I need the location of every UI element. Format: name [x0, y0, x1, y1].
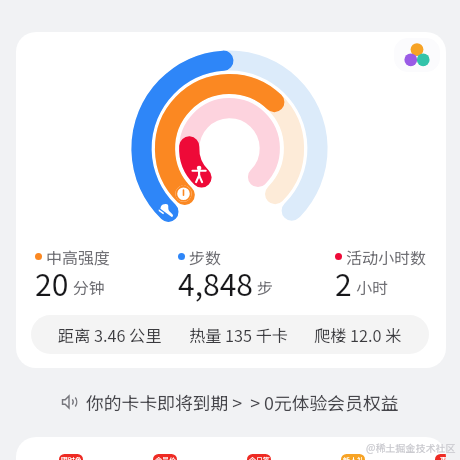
button[interactable]: 中高强度 [35, 245, 111, 311]
staticText: 今日签 [249, 455, 270, 460]
staticText: 2 [335, 261, 352, 304]
button[interactable]: 距离 3.46 公里 [31, 315, 429, 354]
button[interactable]: 步数 [178, 245, 274, 311]
staticText: 新人礼 [343, 455, 364, 460]
staticText: 步 [257, 275, 274, 298]
button[interactable]: Service 4 [323, 442, 383, 460]
staticText: 会员价 [155, 455, 176, 460]
staticText: 距离 3.46 公里 [58, 323, 162, 346]
button[interactable]: Service 5 [417, 442, 446, 460]
button[interactable]: More options [394, 38, 440, 72]
staticText: 中高强度 [46, 245, 111, 268]
staticText: @稀土掘金技术社区 [366, 440, 456, 454]
button[interactable]: Service 3 [229, 442, 289, 460]
button[interactable]: Service 1 [41, 442, 101, 460]
staticText: 20 [35, 261, 69, 304]
staticText: 分钟 [73, 275, 106, 298]
staticText: 限时免 [61, 455, 82, 460]
staticText: 小时 [356, 275, 389, 298]
staticText: 活动小时数 [346, 245, 427, 268]
staticText: 你的卡卡即将到期 > > 0元体验会员权益 [86, 389, 399, 415]
staticText: 4,848 [178, 261, 253, 304]
button[interactable]: 活动小时数 [335, 245, 427, 311]
staticText: 热量 135 千卡 [189, 323, 288, 346]
staticText: 爬楼 12.0 米 [314, 323, 402, 346]
button[interactable]: Service 2 [135, 442, 195, 460]
staticText: 更多 [440, 455, 446, 460]
button[interactable]: 你的卡卡即将到期 > > 0元体验会员权益 [0, 385, 460, 419]
staticText: 步数 [189, 245, 222, 268]
